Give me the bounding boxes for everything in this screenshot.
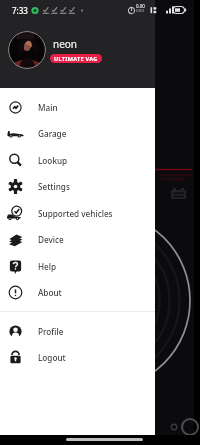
staticText: Device [38,234,64,245]
button[interactable]: Garage [0,120,155,146]
button[interactable]: Lookup [0,147,155,173]
button[interactable]: Main [0,94,155,120]
staticText: Lookup [38,155,68,166]
staticText: 7:33 [12,5,28,16]
staticText: 0.00 [136,3,145,9]
button[interactable]: Device [0,226,155,252]
staticText: neon [53,37,78,51]
staticText: Supported vehicles [38,208,113,219]
button[interactable]: Profile [0,318,155,344]
staticText: Garage [38,128,67,139]
staticText: About [38,287,62,298]
staticText: Profile [38,326,64,337]
button[interactable]: Help [0,253,155,279]
button[interactable]: Supported vehicles [0,200,155,226]
button[interactable]: Settings [0,173,155,199]
staticText: ULTIMATE VAG [54,55,98,63]
staticText: Help [38,261,57,272]
button[interactable]: Logout [0,344,155,370]
staticText: Logout [38,352,66,363]
button[interactable]: ULTIMATE VAG [50,54,102,63]
button[interactable]: About [0,279,155,305]
staticText: Settings [38,181,70,192]
staticText: Main [38,102,58,113]
button[interactable]: Profile photo [8,31,46,69]
staticText: KB/S [136,8,145,13]
